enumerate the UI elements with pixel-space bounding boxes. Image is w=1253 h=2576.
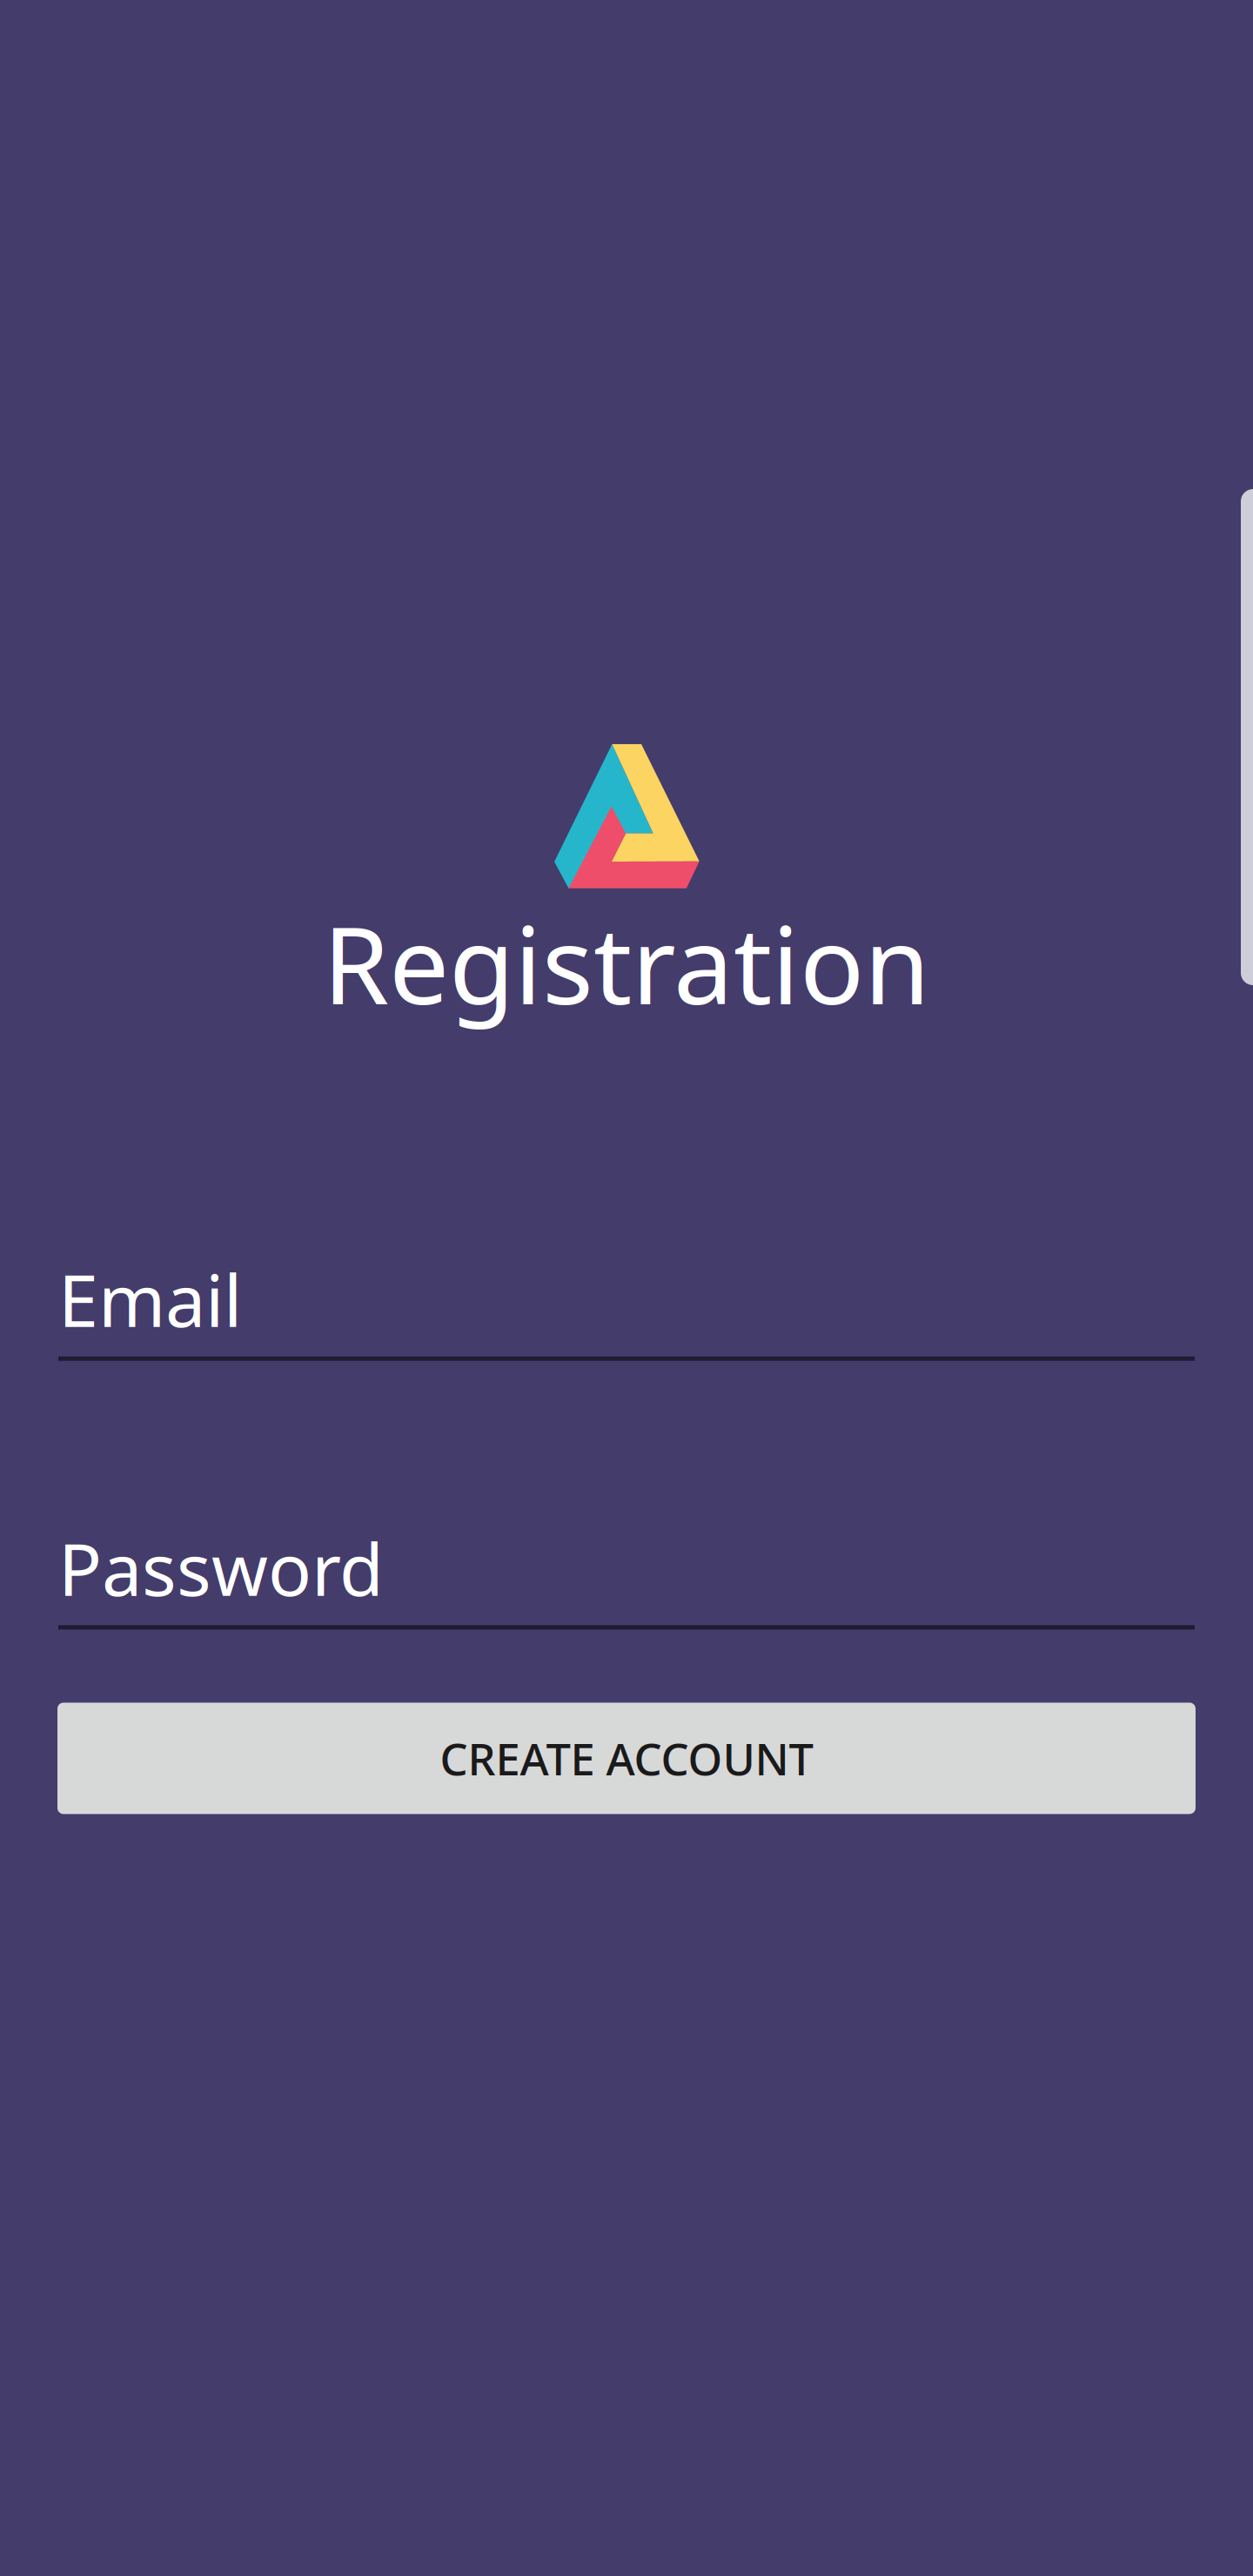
staticText: CREATE ACCOUNT bbox=[440, 1729, 813, 1788]
button[interactable]: Email bbox=[58, 1251, 1195, 1361]
staticText: Registration bbox=[323, 892, 930, 1034]
button[interactable]: Password bbox=[58, 1520, 1195, 1630]
button[interactable]: CREATE ACCOUNT bbox=[57, 1703, 1196, 1814]
staticText: Password bbox=[58, 1520, 384, 1616]
staticText: Email bbox=[58, 1251, 242, 1347]
